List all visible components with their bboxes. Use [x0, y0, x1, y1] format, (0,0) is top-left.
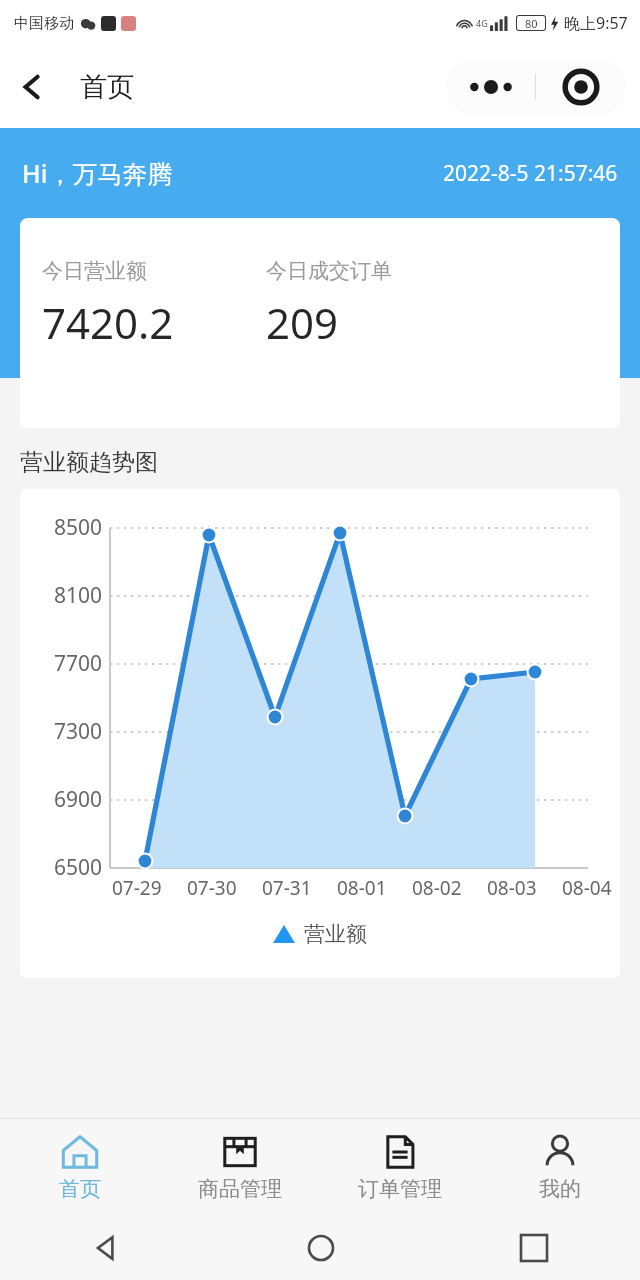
staticText: Hi，万马奔腾: [22, 156, 173, 190]
staticText: 209: [266, 294, 339, 351]
staticText: 首页: [59, 1176, 101, 1202]
staticText: 中国移动: [14, 14, 74, 33]
staticText: 营业额: [304, 921, 367, 947]
staticText: 营业额趋势图: [20, 448, 158, 477]
staticText: 7300: [38, 717, 102, 746]
staticText: 8100: [38, 581, 102, 610]
staticText: 7700: [38, 649, 102, 678]
button[interactable]: 商品管理: [160, 1119, 320, 1216]
button[interactable]: Back: [0, 61, 52, 113]
staticText: 08-02: [412, 875, 462, 901]
button[interactable]: 首页: [0, 1119, 160, 1216]
button[interactable]: 8500: [20, 489, 620, 978]
button[interactable]: 我的: [480, 1119, 640, 1216]
staticText: 08-03: [487, 875, 537, 901]
staticText: 今日成交订单: [266, 258, 392, 284]
staticText: 我的: [539, 1176, 581, 1202]
staticText: 08-04: [562, 875, 612, 901]
staticText: 08-01: [337, 875, 387, 901]
staticText: 80: [525, 16, 538, 31]
staticText: 晚上9:57: [564, 12, 628, 34]
staticText: 7420.2: [42, 294, 174, 351]
staticText: 商品管理: [198, 1176, 282, 1202]
staticText: 6900: [38, 785, 102, 814]
staticText: 6500: [38, 853, 102, 882]
button[interactable]: 今日营业额: [20, 218, 620, 428]
staticText: 07-31: [262, 875, 312, 901]
staticText: 4G: [476, 17, 488, 29]
staticText: 2022-8-5 21:57:46: [443, 159, 618, 188]
staticText: 首页: [80, 70, 134, 104]
staticText: 今日营业额: [42, 258, 147, 284]
staticText: 07-30: [187, 875, 237, 901]
button[interactable]: Home: [214, 1216, 427, 1280]
staticText: 8500: [38, 513, 102, 542]
staticText: 订单管理: [358, 1176, 442, 1202]
button[interactable]: 订单管理: [320, 1119, 480, 1216]
button[interactable]: Back: [0, 1216, 214, 1280]
button[interactable]: Recents: [427, 1216, 640, 1280]
button[interactable]: More: [446, 58, 535, 116]
staticText: 07-29: [112, 875, 162, 901]
button[interactable]: Close mini program: [536, 58, 626, 116]
